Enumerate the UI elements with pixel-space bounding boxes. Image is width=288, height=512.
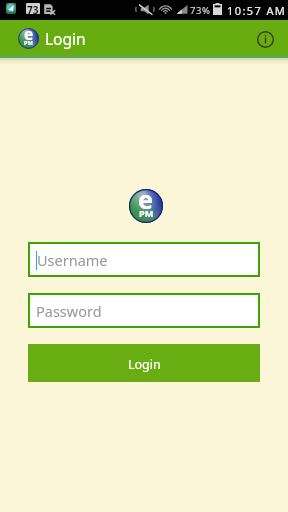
staticText: PM (24, 39, 33, 47)
staticText: 73% (190, 4, 211, 17)
staticText: e (24, 23, 34, 44)
button[interactable]: Username (28, 242, 260, 277)
button[interactable]: Password (28, 293, 260, 328)
staticText: 10:57 AM (227, 3, 287, 18)
staticText: Login (45, 28, 86, 49)
staticText: Username (37, 250, 108, 270)
staticText: 73 (27, 3, 39, 14)
staticText: Login (128, 356, 161, 373)
staticText: Password (36, 301, 102, 321)
button[interactable]: Info (250, 24, 280, 54)
staticText: PM (139, 207, 154, 220)
button[interactable]: Login (28, 344, 260, 382)
staticText: e (138, 182, 154, 216)
